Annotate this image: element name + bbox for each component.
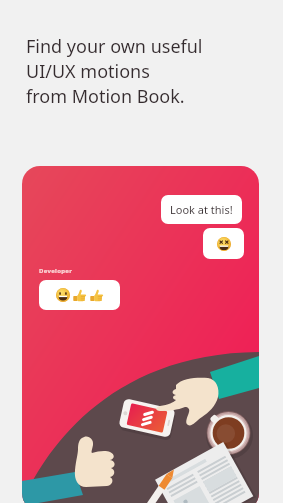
staticText: Look at this! — [170, 202, 233, 217]
button[interactable]: Look at this! — [161, 195, 242, 224]
button[interactable] — [39, 280, 120, 310]
button[interactable] — [203, 228, 244, 259]
staticText: UI/UX motions — [26, 59, 150, 84]
button[interactable]: Look at this! — [22, 166, 259, 503]
staticText: Developer — [39, 267, 73, 275]
staticText: from Motion Book. — [26, 84, 185, 109]
staticText: Find your own useful — [26, 34, 203, 59]
